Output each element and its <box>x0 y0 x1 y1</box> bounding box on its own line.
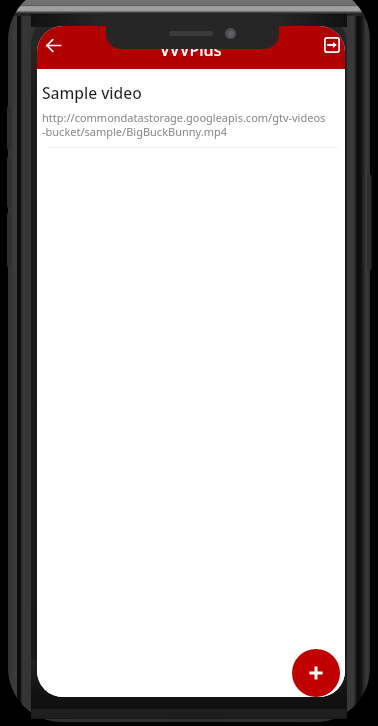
button[interactable]: Back <box>37 28 70 62</box>
staticText: VVVPlus <box>160 39 222 61</box>
button[interactable]: Add <box>292 649 340 697</box>
button[interactable]: Sample video <box>37 69 345 147</box>
staticText: Sample video <box>42 82 142 103</box>
staticText: http://commondatastorage.googleapis.com/… <box>42 110 326 139</box>
button[interactable]: Sign in <box>315 28 345 62</box>
